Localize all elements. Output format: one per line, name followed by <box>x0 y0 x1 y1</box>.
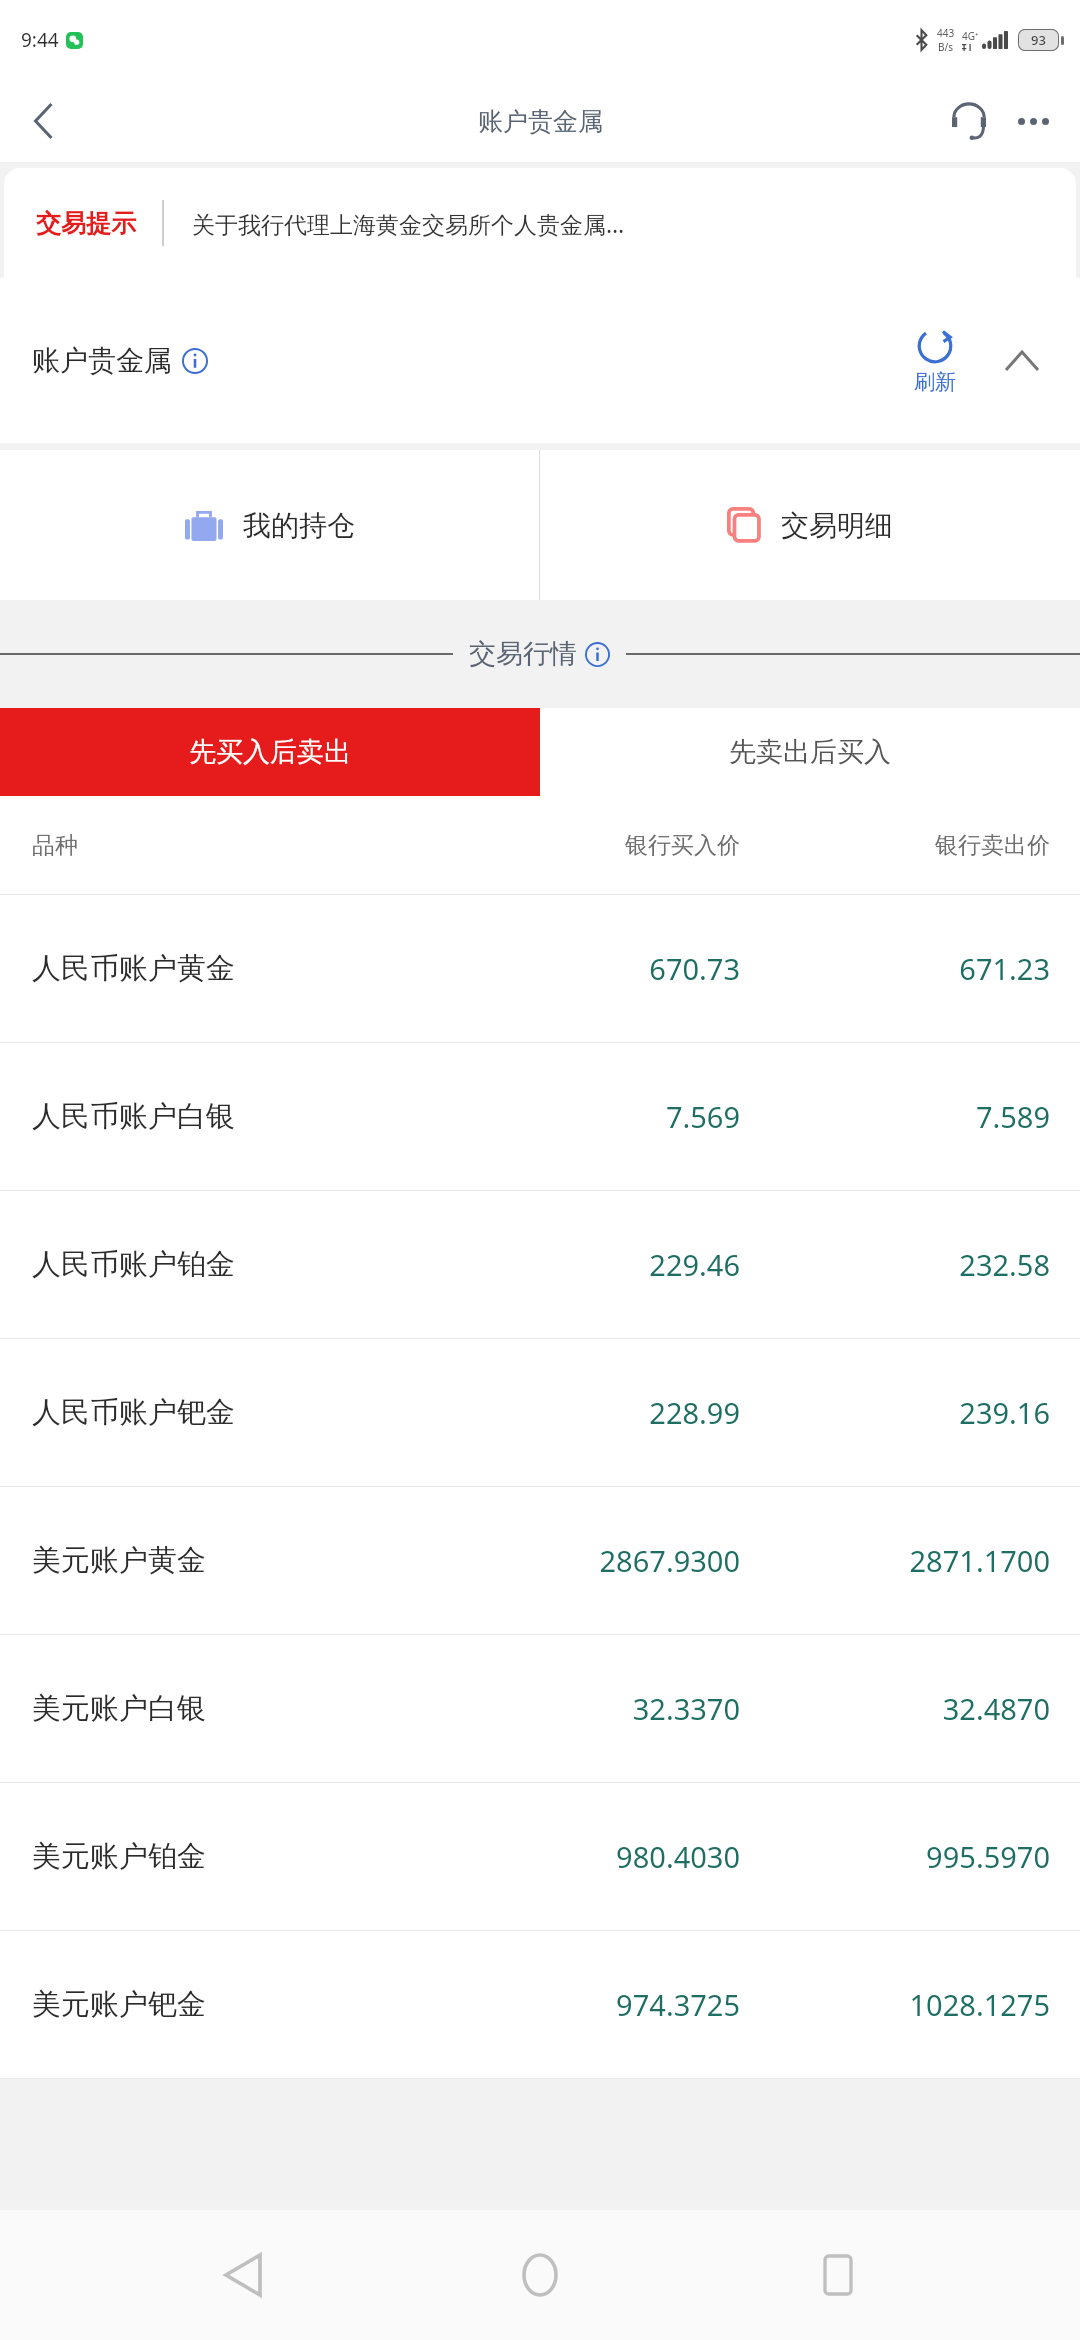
button[interactable]: 人民币账户黄金 <box>0 895 1080 1042</box>
button[interactable]: Customer service <box>938 90 1000 152</box>
staticText: 人民币账户黄金 <box>32 950 520 987</box>
staticText: B/s <box>938 40 954 54</box>
staticText: 美元账户黄金 <box>32 1542 520 1579</box>
staticText: 670.73 <box>520 949 740 988</box>
staticText: 228.99 <box>520 1393 740 1432</box>
button[interactable]: 人民币账户白银 <box>0 1043 1080 1190</box>
staticText: 美元账户白银 <box>32 1690 520 1727</box>
staticText: 7.589 <box>832 1097 1050 1136</box>
button[interactable]: 刷新 <box>906 323 964 399</box>
staticText: 美元账户钯金 <box>32 1986 520 2023</box>
staticText: 995.5970 <box>832 1837 1050 1876</box>
staticText: 1028.1275 <box>832 1985 1050 2024</box>
button[interactable]: 人民币账户铂金 <box>0 1191 1080 1338</box>
staticText: 32.3370 <box>520 1689 740 1728</box>
button[interactable]: 先买入后卖出 <box>0 708 540 796</box>
staticText: 交易提示 <box>36 208 136 239</box>
staticText: 交易行情 <box>469 637 577 671</box>
button[interactable]: 美元账户铂金 <box>0 1783 1080 1930</box>
staticText: 443 <box>937 26 955 40</box>
button[interactable]: Back <box>10 88 76 154</box>
staticText: 银行卖出价 <box>832 831 1050 860</box>
staticText: 2871.1700 <box>832 1541 1050 1580</box>
staticText: 974.3725 <box>520 1985 740 2024</box>
button[interactable]: Home <box>485 2220 595 2330</box>
button[interactable]: 人民币账户钯金 <box>0 1339 1080 1486</box>
staticText: 4G⁺ <box>962 29 979 43</box>
button[interactable]: Back <box>188 2220 298 2330</box>
staticText: 7.569 <box>520 1097 740 1136</box>
staticText: 229.46 <box>520 1245 740 1284</box>
staticText: 239.16 <box>832 1393 1050 1432</box>
staticText: 银行买入价 <box>520 831 740 860</box>
button[interactable]: 先卖出后买入 <box>540 708 1080 796</box>
button[interactable]: Recent apps <box>783 2220 893 2330</box>
button[interactable]: More options <box>1004 92 1062 150</box>
button[interactable]: 美元账户白银 <box>0 1635 1080 1782</box>
staticText: 美元账户铂金 <box>32 1838 520 1875</box>
button[interactable]: 美元账户黄金 <box>0 1487 1080 1634</box>
staticText: 人民币账户白银 <box>32 1098 520 1135</box>
button[interactable]: 交易提示 <box>4 168 1076 278</box>
staticText: 先买入后卖出 <box>189 735 351 769</box>
staticText: 9:44 <box>21 27 59 53</box>
button[interactable]: 我的持仓 <box>0 450 539 600</box>
button[interactable]: Collapse <box>994 333 1050 389</box>
staticText: 我的持仓 <box>243 508 355 543</box>
staticText: 93 <box>1031 31 1046 49</box>
staticText: 2867.9300 <box>520 1541 740 1580</box>
staticText: 先卖出后买入 <box>729 735 891 769</box>
staticText: 人民币账户铂金 <box>32 1246 520 1283</box>
button[interactable]: 账户贵金属 <box>32 343 208 378</box>
staticText: 980.4030 <box>520 1837 740 1876</box>
staticText: 人民币账户钯金 <box>32 1394 520 1431</box>
staticText: 32.4870 <box>832 1689 1050 1728</box>
staticText: 品种 <box>32 831 520 860</box>
staticText: 账户贵金属 <box>478 106 603 137</box>
staticText: 232.58 <box>832 1245 1050 1284</box>
staticText: 671.23 <box>832 949 1050 988</box>
staticText: 交易明细 <box>781 508 893 543</box>
staticText: 刷新 <box>914 369 956 395</box>
staticText: 账户贵金属 <box>32 343 172 378</box>
button[interactable]: 美元账户钯金 <box>0 1931 1080 2078</box>
button[interactable]: 交易明细 <box>540 450 1080 600</box>
staticText: 关于我行代理上海黄金交易所个人贵金属… <box>192 208 625 239</box>
